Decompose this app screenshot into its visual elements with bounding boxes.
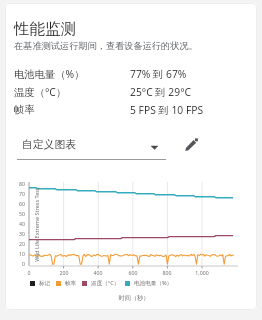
staticText: 200 [48,269,80,276]
staticText: 电池电量（%） [134,279,173,287]
staticText: 温度（°C） [14,85,67,99]
staticText: 800 [151,269,183,276]
staticText: 40 [8,220,25,227]
staticText: 电池电量（%） [14,67,85,81]
staticText: 20 [8,240,25,247]
staticText: 600 [117,269,149,276]
staticText: 10 [8,250,25,257]
staticText: 0 [13,269,45,276]
staticText: 77% 到 67% [130,67,187,81]
staticText: 400 [82,269,114,276]
staticText: 5 FPS 到 10 FPS [130,103,204,117]
staticText: 30 [8,230,25,237]
staticText: 50 [8,210,25,217]
staticText: 标记 [39,280,51,287]
staticText: 时间（秒） [99,294,169,302]
staticText: 80 [8,180,25,187]
staticText: 帧率 [14,103,35,116]
button[interactable]: 电池电量（%） [5,64,257,82]
staticText: 70 [8,190,25,197]
staticText: 1,000 [186,269,218,276]
staticText: Wild Life Extreme Stress Test [33,180,40,270]
staticText: 性能监测 [14,19,76,39]
button[interactable]: 温度（°C） [5,82,257,100]
button[interactable]: 帧率 [5,100,257,118]
staticText: 25°C 到 29°C [130,85,192,99]
staticText: 帧率 [65,280,77,287]
staticText: 温度（°C） [91,279,120,287]
staticText: 0 [8,260,25,267]
staticText: 在基准测试运行期间，查看设备运行的状况。 [14,40,198,52]
staticText: 60 [8,200,25,207]
button[interactable]: 编辑图表 [180,133,203,156]
button[interactable]: 自定义图表 [17,136,166,160]
staticText: 自定义图表 [22,138,76,152]
